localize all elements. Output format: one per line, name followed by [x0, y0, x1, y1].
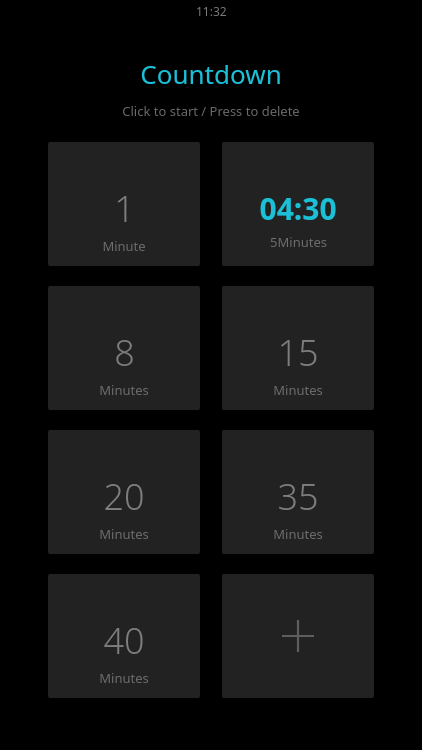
staticText: 15: [277, 328, 319, 377]
button[interactable]: 04:30: [222, 142, 374, 266]
staticText: Click to start / Press to delete: [122, 102, 300, 120]
staticText: Minutes: [99, 381, 149, 399]
staticText: 1: [114, 184, 135, 233]
staticText: Countdown: [140, 56, 282, 91]
button[interactable]: Add timer: [222, 574, 374, 698]
staticText: Minutes: [273, 525, 323, 543]
button[interactable]: 40: [48, 574, 200, 698]
button[interactable]: 20: [48, 430, 200, 554]
staticText: Minutes: [99, 525, 149, 543]
staticText: Minutes: [99, 669, 149, 687]
button[interactable]: 35: [222, 430, 374, 554]
button[interactable]: 8: [48, 286, 200, 410]
staticText: 20: [103, 472, 145, 521]
staticText: 8: [114, 328, 135, 377]
staticText: 35: [277, 472, 319, 521]
staticText: 5Minutes: [270, 233, 327, 251]
staticText: 40: [103, 616, 145, 665]
staticText: 11:32: [196, 3, 227, 19]
staticText: 04:30: [259, 188, 337, 229]
button[interactable]: 15: [222, 286, 374, 410]
button[interactable]: 1: [48, 142, 200, 266]
staticText: Minute: [102, 237, 146, 255]
staticText: Minutes: [273, 381, 323, 399]
